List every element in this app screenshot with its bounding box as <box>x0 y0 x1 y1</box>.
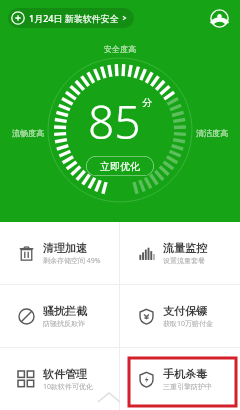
button[interactable]: 手机杀毒 <box>120 348 240 410</box>
button[interactable]: 清理加速 <box>0 222 119 284</box>
button[interactable]: 流量监控 <box>120 222 240 284</box>
staticText: 立即优化 <box>100 160 140 173</box>
staticText: 清理加速 <box>43 241 87 255</box>
staticText: 骚扰拦截 <box>43 304 87 318</box>
staticText: 手机杀毒 <box>163 367 207 381</box>
staticText: 软件管理 <box>43 367 87 381</box>
staticText: 支付保镖 <box>163 304 207 318</box>
staticText: 流量监控 <box>163 241 207 255</box>
staticText: 流畅度高 <box>12 128 44 138</box>
button[interactable]: 1月24日 新装软件安全 <box>8 8 134 28</box>
button[interactable]: Account <box>206 5 232 31</box>
staticText: 获取10万赔付金 <box>163 319 214 329</box>
staticText: 安全度高 <box>104 44 136 54</box>
staticText: 设置流量套餐 <box>163 256 205 265</box>
staticText: 1月24日 新装软件安全 <box>29 12 119 24</box>
button[interactable]: 软件管理 <box>0 348 119 410</box>
staticText: 三重引擎防护中 <box>163 382 212 391</box>
button[interactable]: 支付保镖 <box>120 285 240 347</box>
staticText: 分 <box>142 96 152 109</box>
staticText: 清洁度高 <box>196 128 228 138</box>
staticText: 剩余存储空间 49% <box>43 256 101 266</box>
button[interactable]: 骚扰拦截 <box>0 285 119 347</box>
staticText: 85 <box>88 90 141 153</box>
staticText: 10款软件可优化 <box>43 382 94 392</box>
staticText: 防骚扰反欺诈 <box>43 319 85 328</box>
button[interactable]: 立即优化 <box>86 156 154 176</box>
